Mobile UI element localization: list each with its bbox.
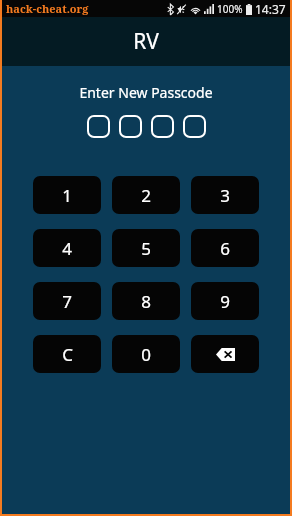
button[interactable]: 2 — [112, 176, 180, 214]
staticText: 3 — [220, 184, 230, 207]
staticText: RV — [133, 27, 159, 56]
button[interactable]: C — [33, 335, 101, 373]
button[interactable]: 8 — [112, 282, 180, 320]
staticText: 5 — [141, 237, 151, 260]
staticText: 2 — [141, 184, 151, 207]
staticText: 100% — [217, 2, 243, 16]
staticText: 6 — [220, 237, 230, 260]
staticText: C — [62, 343, 73, 366]
staticText: hack-cheat.org — [6, 1, 89, 16]
staticText: 1 — [62, 184, 72, 207]
staticText: Enter New Passcode — [79, 83, 213, 102]
button[interactable]: 6 — [191, 229, 259, 267]
staticText: 7 — [62, 290, 72, 313]
button[interactable]: 1 — [33, 176, 101, 214]
button[interactable]: Backspace — [191, 335, 259, 373]
staticText: 8 — [141, 290, 151, 313]
staticText: 9 — [220, 290, 230, 313]
staticText: 0 — [141, 343, 151, 366]
button[interactable]: 4 — [33, 229, 101, 267]
staticText: 14:37 — [255, 1, 286, 17]
button[interactable]: 0 — [112, 335, 180, 373]
button[interactable]: 5 — [112, 229, 180, 267]
staticText: 4 — [62, 237, 72, 260]
button[interactable]: 7 — [33, 282, 101, 320]
button[interactable]: 9 — [191, 282, 259, 320]
button[interactable]: 3 — [191, 176, 259, 214]
